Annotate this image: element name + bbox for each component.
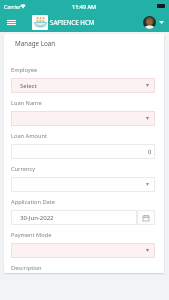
button[interactable]	[11, 177, 155, 192]
staticText: Description	[11, 264, 42, 271]
staticText: Payment Mode	[11, 231, 52, 238]
staticText: Loan Amount	[11, 132, 48, 139]
staticText: Carrier	[4, 3, 21, 10]
button[interactable]: Profile	[143, 16, 156, 29]
staticText: Loan Name	[11, 99, 42, 106]
staticText: 30-Jun-2022	[20, 214, 54, 222]
button[interactable]	[11, 243, 155, 258]
button[interactable]: Menu	[3, 14, 19, 30]
staticText: Application Date	[11, 198, 56, 205]
other: Expand account menu	[159, 21, 164, 24]
button[interactable]: Pick date	[137, 210, 155, 225]
staticText: Employee	[11, 66, 38, 73]
staticText: Currency	[11, 165, 36, 172]
button[interactable]: 30-Jun-2022	[11, 210, 137, 225]
button[interactable]: Select	[11, 78, 155, 93]
button[interactable]	[11, 111, 155, 126]
staticText: 11:49 AM	[72, 3, 97, 10]
staticText: Manage Loan	[15, 39, 56, 48]
button[interactable]: 0	[11, 144, 155, 159]
staticText: SAPIENCE HCM	[50, 18, 95, 26]
staticText: 0	[148, 148, 152, 156]
staticText: Select	[20, 82, 37, 90]
